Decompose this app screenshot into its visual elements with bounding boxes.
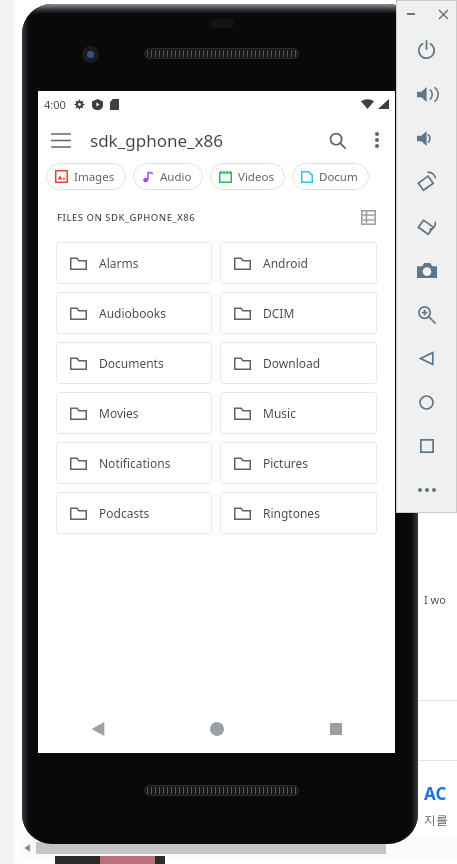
button[interactable]: Music <box>220 392 377 434</box>
staticText: 지를 <box>424 812 448 827</box>
staticText: 4:00 <box>44 97 66 112</box>
button[interactable]: Overview <box>396 424 457 468</box>
button[interactable]: More options <box>359 122 395 158</box>
staticText: Alarms <box>99 255 139 271</box>
button[interactable]: Alarms <box>56 242 212 284</box>
button[interactable]: Rotate right <box>396 204 457 248</box>
button[interactable]: Docum <box>292 163 369 190</box>
button[interactable]: Take screenshot <box>396 248 457 292</box>
staticText: Images <box>74 169 115 185</box>
staticText: Movies <box>99 405 139 421</box>
button[interactable]: Audio <box>133 163 203 190</box>
staticText: DCIM <box>263 305 295 321</box>
button[interactable]: DCIM <box>220 292 377 334</box>
staticText: Download <box>263 355 321 371</box>
button[interactable]: Back <box>38 705 157 753</box>
button[interactable]: Audiobooks <box>56 292 212 334</box>
staticText: Audiobooks <box>99 305 166 321</box>
button[interactable]: Home <box>396 380 457 424</box>
button[interactable]: Rotate left <box>396 160 457 204</box>
staticText: Docum <box>319 169 358 185</box>
staticText: Notifications <box>99 455 171 471</box>
staticText: Ringtones <box>263 505 320 521</box>
button[interactable]: Images <box>46 163 126 190</box>
staticText: Pictures <box>263 455 309 471</box>
button[interactable]: Recent apps <box>276 705 395 753</box>
staticText: Music <box>263 405 296 421</box>
staticText: Podcasts <box>99 505 150 521</box>
button[interactable]: Home <box>157 705 276 753</box>
button[interactable]: Search <box>315 118 359 162</box>
staticText: Videos <box>238 169 274 185</box>
staticText: Android <box>263 255 308 271</box>
button[interactable]: Zoom <box>396 292 457 336</box>
staticText: Audio <box>160 169 192 185</box>
button[interactable]: Volume down <box>396 116 457 160</box>
button[interactable]: Close <box>432 3 454 25</box>
button[interactable]: More <box>396 468 457 512</box>
staticText: Documents <box>99 355 164 371</box>
button[interactable]: Minimize <box>400 3 422 25</box>
button[interactable]: Switch to list view <box>355 204 381 230</box>
button[interactable]: Documents <box>56 342 212 384</box>
staticText: I wo <box>424 592 446 607</box>
button[interactable]: Volume up <box>396 72 457 116</box>
button[interactable]: Android <box>220 242 377 284</box>
button[interactable]: Notifications <box>56 442 212 484</box>
button[interactable]: Open navigation drawer <box>38 117 84 163</box>
staticText: FILES ON SDK_GPHONE_X86 <box>57 211 196 224</box>
button[interactable]: Back <box>396 336 457 380</box>
button[interactable]: Videos <box>210 163 285 190</box>
button[interactable]: Power <box>396 28 457 72</box>
button[interactable]: Ringtones <box>220 492 377 534</box>
staticText: sdk_gphone_x86 <box>90 129 224 152</box>
button[interactable]: Movies <box>56 392 212 434</box>
button[interactable]: Podcasts <box>56 492 212 534</box>
staticText: AC <box>424 782 447 805</box>
button[interactable]: Download <box>220 342 377 384</box>
button[interactable]: Pictures <box>220 442 377 484</box>
